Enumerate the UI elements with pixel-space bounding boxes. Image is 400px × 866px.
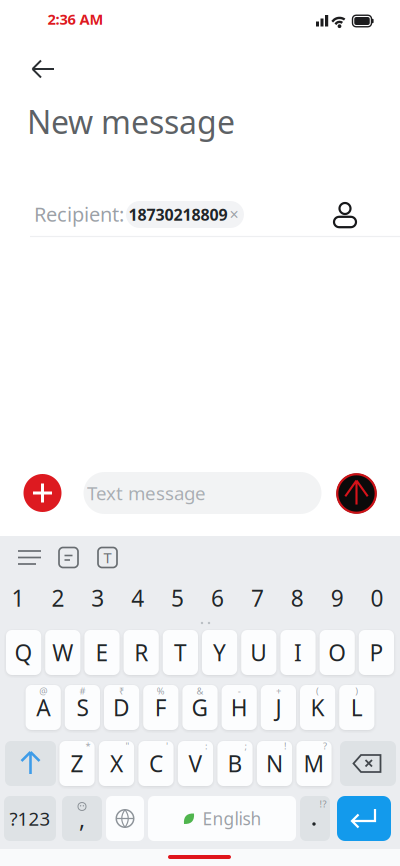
staticText: ₹ <box>119 685 124 697</box>
button[interactable]: 0 <box>360 578 394 618</box>
staticText: ' <box>166 740 168 752</box>
staticText: × <box>229 203 238 225</box>
staticText: A <box>36 692 50 722</box>
staticText: English <box>202 807 261 830</box>
button[interactable] <box>337 796 391 841</box>
button[interactable]: E <box>84 630 120 675</box>
staticText: O <box>328 637 346 667</box>
button[interactable]: V <box>178 741 213 786</box>
button[interactable]: S <box>65 685 100 730</box>
staticText: W <box>52 637 73 667</box>
button[interactable]: C <box>138 741 174 786</box>
button[interactable]: R <box>124 630 159 675</box>
button[interactable] <box>14 547 45 568</box>
button[interactable]: 6 <box>200 578 234 618</box>
button[interactable]: T <box>98 547 117 567</box>
button[interactable]: Y <box>202 630 237 675</box>
staticText: 2 <box>51 583 64 613</box>
staticText: ( <box>316 685 319 697</box>
button[interactable]: 1 <box>1 578 35 618</box>
staticText: + <box>276 685 281 697</box>
button[interactable]: 2 <box>41 578 75 618</box>
staticText: P <box>369 637 383 667</box>
staticText: New message <box>27 100 235 143</box>
button[interactable] <box>59 547 78 567</box>
button[interactable]: H <box>222 685 257 730</box>
staticText: : <box>205 740 208 752</box>
staticText: % <box>157 685 165 697</box>
button[interactable]: Q <box>6 630 41 675</box>
staticText: L <box>351 692 363 722</box>
staticText: H <box>231 692 248 722</box>
button[interactable]: N <box>257 741 292 786</box>
button[interactable]: !? <box>300 796 330 841</box>
staticText: 4 <box>131 583 144 613</box>
staticText: 9 <box>331 583 344 613</box>
staticText: R <box>134 637 148 667</box>
staticText: C <box>149 748 163 778</box>
button[interactable]: , <box>62 796 102 841</box>
button[interactable]: D <box>104 685 139 730</box>
button[interactable]: W <box>45 630 80 675</box>
button[interactable]: English <box>148 796 296 841</box>
staticText: & <box>196 685 203 697</box>
button[interactable]: Z <box>59 741 95 786</box>
staticText: 1 <box>11 583 24 613</box>
staticText: 8 <box>291 583 304 613</box>
staticText: - <box>238 685 241 697</box>
button[interactable]: Text message <box>83 472 321 514</box>
button[interactable]: J <box>261 685 296 730</box>
staticText: , <box>79 804 85 834</box>
button[interactable] <box>106 796 144 841</box>
button[interactable]: T <box>163 630 198 675</box>
staticText: D <box>113 692 130 722</box>
staticText: E <box>95 637 108 667</box>
staticText: 6 <box>211 583 224 613</box>
staticText: 7 <box>251 583 264 613</box>
button[interactable] <box>23 474 61 512</box>
button[interactable]: 5 <box>161 578 195 618</box>
button[interactable]: X <box>99 741 134 786</box>
staticText: 2:36 AM <box>47 9 103 29</box>
button[interactable]: F <box>143 685 178 730</box>
button[interactable]: 7 <box>240 578 274 618</box>
staticText: 18730218809 <box>128 204 227 225</box>
button[interactable] <box>5 741 56 786</box>
button[interactable] <box>336 473 376 513</box>
button[interactable] <box>340 741 396 786</box>
button[interactable]: M <box>296 741 332 786</box>
staticText: " <box>125 740 129 752</box>
staticText: T <box>103 548 111 567</box>
button[interactable]: ?123 <box>4 796 56 841</box>
button[interactable] <box>329 201 360 227</box>
staticText: 5 <box>171 583 184 613</box>
button[interactable]: U <box>241 630 276 675</box>
button[interactable]: P <box>359 630 394 675</box>
staticText: G <box>191 692 208 722</box>
button[interactable]: K <box>300 685 335 730</box>
staticText: # <box>79 685 85 697</box>
staticText: I <box>294 637 302 667</box>
button[interactable]: L <box>339 685 374 730</box>
staticText: @ <box>39 685 47 697</box>
staticText: Q <box>15 637 33 667</box>
staticText: ! <box>284 740 287 752</box>
staticText: * <box>85 740 90 752</box>
staticText: V <box>188 748 202 778</box>
button[interactable]: 4 <box>121 578 155 618</box>
button[interactable]: 3 <box>81 578 115 618</box>
button[interactable]: O <box>320 630 355 675</box>
staticText: Recipient: <box>34 201 124 227</box>
button[interactable]: G <box>182 685 218 730</box>
button[interactable]: 8 <box>280 578 314 618</box>
staticText: 0 <box>371 583 384 613</box>
button[interactable]: I <box>280 630 316 675</box>
staticText: M <box>303 748 324 778</box>
button[interactable]: 9 <box>320 578 354 618</box>
button[interactable] <box>20 44 64 88</box>
button[interactable]: B <box>217 741 253 786</box>
button[interactable]: A <box>26 685 61 730</box>
button[interactable]: 18730218809 <box>126 201 244 228</box>
staticText: B <box>227 748 242 778</box>
staticText: K <box>311 692 325 722</box>
